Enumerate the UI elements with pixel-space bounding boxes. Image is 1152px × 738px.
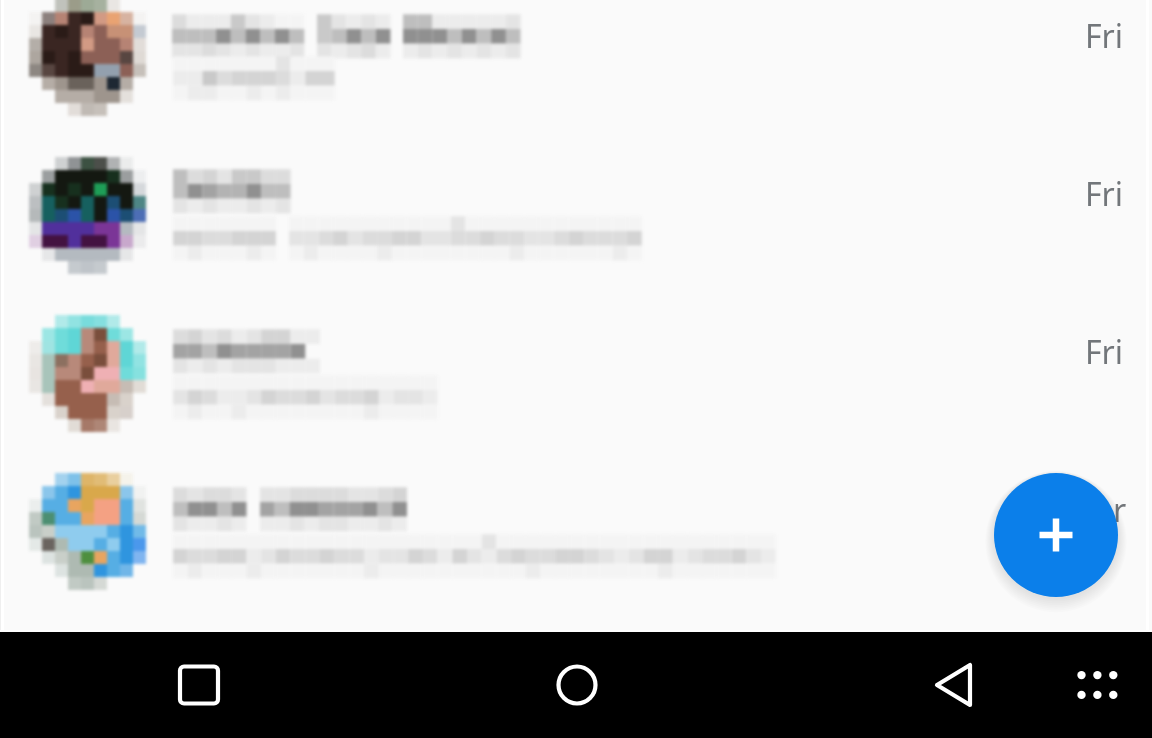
staticText: 19 Mar — [1021, 488, 1127, 532]
button[interactable]: Fri — [1085, 172, 1124, 216]
button[interactable]: Fri — [1085, 14, 1124, 58]
button[interactable]: Fri — [1085, 330, 1124, 374]
staticText: Fri — [1085, 172, 1124, 216]
button[interactable]: Compose — [994, 473, 1118, 597]
button[interactable]: 19 Mar — [1021, 488, 1127, 532]
staticText: Fri — [1085, 330, 1124, 374]
staticText: Fri — [1085, 14, 1124, 58]
